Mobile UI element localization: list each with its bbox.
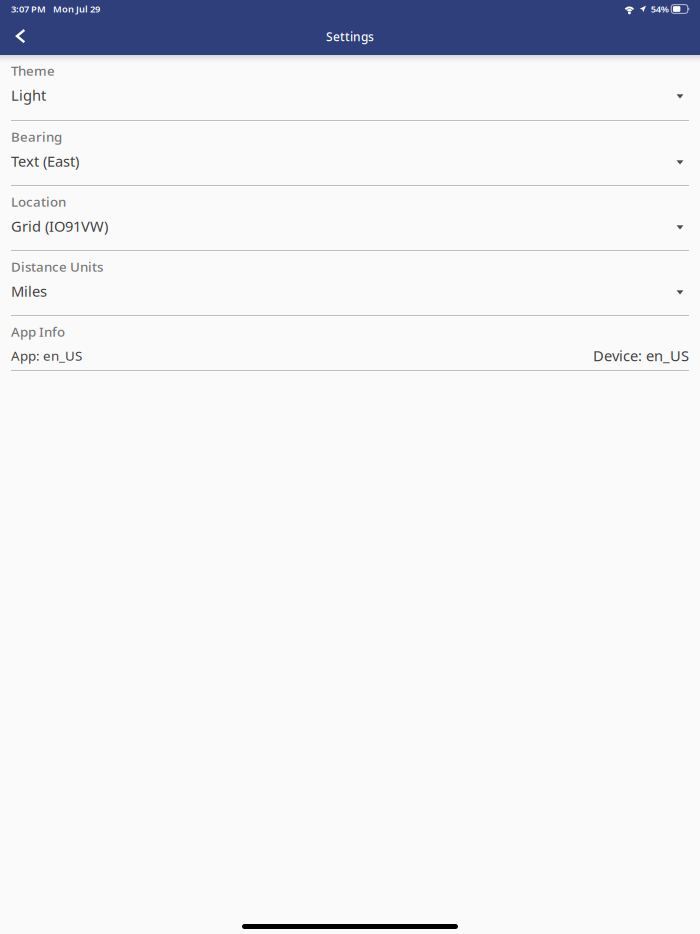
staticText: Theme [11,62,55,79]
staticText: Device: en_US [593,346,689,365]
staticText: Grid (IO91VW) [11,216,108,236]
staticText: Text (East) [11,151,79,171]
button[interactable]: Distance Units [11,252,689,317]
staticText: Distance Units [11,258,103,275]
staticText: App Info [11,323,65,340]
staticText: App: en_US [11,347,82,364]
staticText: 54% [651,3,669,15]
staticText: Bearing [11,128,62,145]
staticText: 3:07 PM [11,3,46,15]
button[interactable]: Bearing [11,122,689,187]
button[interactable]: Location [11,187,689,252]
staticText: Mon Jul 29 [53,3,100,15]
staticText: Miles [11,281,47,301]
button[interactable]: Back [6,19,36,54]
staticText: Settings [326,28,374,44]
button[interactable]: Theme [11,63,689,122]
staticText: Location [11,193,66,210]
staticText: Light [11,85,46,105]
